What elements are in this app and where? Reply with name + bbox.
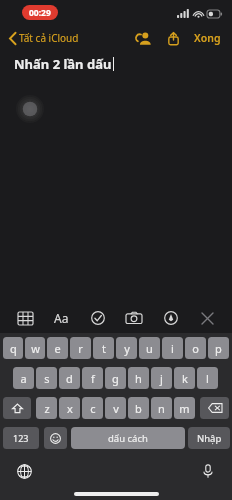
staticText: i (171, 341, 174, 356)
button[interactable]: y (116, 337, 137, 359)
button[interactable]: w (25, 337, 45, 359)
button[interactable]: x (59, 397, 80, 419)
button[interactable]: Nhập (188, 427, 230, 449)
button[interactable]: n (151, 397, 172, 419)
button[interactable]: e (47, 337, 68, 359)
button[interactable]: Định dạng (48, 305, 74, 331)
button[interactable]: dấu cách (71, 427, 185, 449)
button[interactable]: d (59, 367, 80, 389)
button[interactable]: m (174, 397, 195, 419)
button[interactable]: Danh sách kiểm (85, 305, 111, 331)
staticText: u (146, 341, 153, 356)
button[interactable]: o (185, 337, 206, 359)
button[interactable]: Biểu tượng cảm xúc (44, 427, 67, 449)
button[interactable]: Bảng (12, 305, 38, 331)
button[interactable]: Xong (190, 28, 225, 48)
staticText: 00:29 (29, 7, 51, 19)
button[interactable]: Tất cả iCloud (7, 28, 81, 48)
staticText: x (67, 401, 73, 416)
staticText: p (215, 341, 222, 356)
staticText: j (160, 371, 163, 386)
button[interactable]: a (13, 367, 34, 389)
staticText: l (206, 371, 209, 386)
staticText: b (135, 401, 142, 416)
button[interactable]: 123 (3, 427, 39, 449)
button[interactable]: j (151, 367, 172, 389)
button[interactable]: Xóa (200, 397, 229, 419)
staticText: d (66, 371, 73, 386)
staticText: f (91, 371, 95, 386)
staticText: v (113, 401, 119, 416)
button[interactable]: Chia sẻ (162, 27, 184, 49)
staticText: q (10, 341, 17, 356)
staticText: o (192, 341, 199, 356)
button[interactable]: Shift (3, 397, 31, 419)
staticText: w (31, 341, 40, 356)
button[interactable]: c (82, 397, 103, 419)
button[interactable]: u (139, 337, 160, 359)
button[interactable]: r (70, 337, 91, 359)
staticText: Nhấn 2 lần dấu (14, 55, 112, 73)
staticText: Tất cả iCloud (19, 31, 79, 45)
button[interactable]: Đóng (194, 305, 220, 331)
staticText: g (112, 371, 119, 386)
staticText: m (179, 401, 190, 416)
button[interactable]: q (3, 337, 23, 359)
staticText: z (44, 401, 50, 416)
button[interactable]: Vẽ (158, 305, 184, 331)
staticText: y (124, 341, 130, 356)
staticText: c (90, 401, 96, 416)
button[interactable]: k (174, 367, 195, 389)
button[interactable]: p (208, 337, 229, 359)
button[interactable]: v (105, 397, 126, 419)
staticText: Nhập (197, 432, 222, 445)
button[interactable]: Cộng tác (132, 27, 154, 49)
staticText: e (54, 341, 61, 356)
button[interactable]: z (36, 397, 57, 419)
button[interactable]: t (93, 337, 114, 359)
staticText: r (78, 341, 83, 356)
staticText: 123 (13, 432, 29, 444)
staticText: h (135, 371, 142, 386)
staticText: s (44, 371, 50, 386)
button[interactable]: Đổi bàn phím (14, 461, 34, 481)
button[interactable]: Máy ảnh (121, 305, 147, 331)
staticText: Xong (194, 31, 221, 45)
button[interactable]: s (36, 367, 57, 389)
button[interactable]: h (128, 367, 149, 389)
staticText: Aa (54, 310, 69, 326)
staticText: a (20, 371, 27, 386)
button[interactable]: i (162, 337, 183, 359)
button[interactable]: Đọc chính tả (198, 461, 218, 481)
staticText: k (182, 371, 188, 386)
button[interactable]: l (197, 367, 218, 389)
staticText: n (158, 401, 165, 416)
staticText: t (102, 341, 106, 356)
button[interactable]: f (82, 367, 103, 389)
button[interactable]: b (128, 397, 149, 419)
button[interactable]: g (105, 367, 126, 389)
staticText: dấu cách (108, 432, 148, 445)
